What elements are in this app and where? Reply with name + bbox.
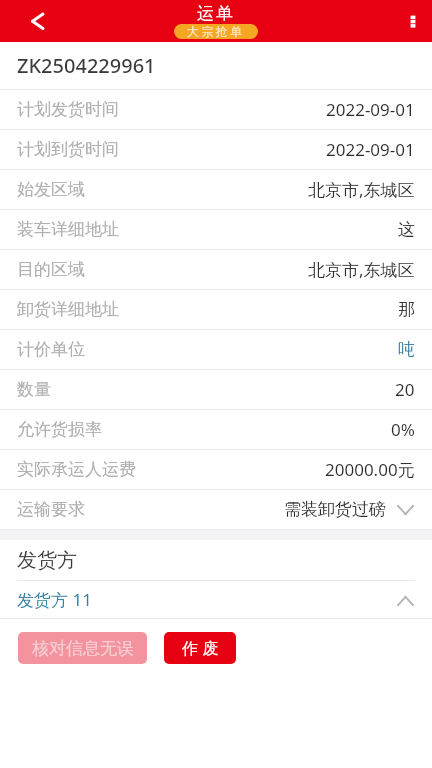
staticText: 计划发货时间 xyxy=(17,99,119,120)
button[interactable]: 作 废 xyxy=(164,632,236,664)
button[interactable]: 核对信息无误 xyxy=(18,632,147,664)
button[interactable]: Back xyxy=(0,0,56,42)
staticText: 大宗抢单 xyxy=(187,24,245,39)
staticText: 20000.00元 xyxy=(325,458,415,481)
staticText: 2022-09-01 xyxy=(326,98,415,121)
staticText: 运单 xyxy=(196,3,234,24)
staticText: 发货方 xyxy=(17,548,77,573)
staticText: 0% xyxy=(391,418,415,441)
staticText: 2022-09-01 xyxy=(326,138,415,161)
staticText: 计价单位 xyxy=(17,339,85,360)
staticText: 吨 xyxy=(398,339,415,360)
button[interactable]: More options xyxy=(390,0,432,42)
staticText: 实际承运人运费 xyxy=(17,459,136,480)
staticText: 需装卸货过磅 xyxy=(284,499,386,520)
staticText: 计划到货时间 xyxy=(17,139,119,160)
staticText: ZK2504229961 xyxy=(17,52,156,79)
button[interactable]: 发货方 11 xyxy=(0,581,432,618)
staticText: 北京市,东城区 xyxy=(308,258,415,281)
staticText: 目的区域 xyxy=(17,259,85,280)
staticText: 发货方 11 xyxy=(17,588,92,611)
staticText: 那 xyxy=(398,299,415,320)
staticText: 核对信息无误 xyxy=(32,638,134,659)
staticText: 允许货损率 xyxy=(17,419,102,440)
staticText: 装车详细地址 xyxy=(17,219,119,240)
staticText: 卸货详细地址 xyxy=(17,299,119,320)
staticText: 始发区域 xyxy=(17,179,85,200)
staticText: 数量 xyxy=(17,379,51,400)
staticText: 运输要求 xyxy=(17,499,85,520)
staticText: 这 xyxy=(398,219,415,240)
staticText: 20 xyxy=(395,378,415,401)
staticText: 北京市,东城区 xyxy=(308,178,415,201)
staticText: 作 废 xyxy=(182,637,219,659)
